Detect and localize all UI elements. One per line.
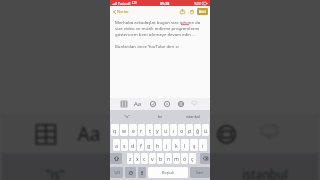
button[interactable]: Boşluk bbox=[148, 167, 188, 178]
button[interactable]: Hide keyboard bbox=[191, 100, 198, 107]
button[interactable]: n bbox=[165, 153, 172, 164]
button[interactable]: d bbox=[129, 139, 136, 151]
button[interactable]: Checklist bbox=[149, 100, 156, 107]
button[interactable]: y bbox=[154, 124, 161, 136]
staticText: a bbox=[115, 142, 118, 149]
staticText: "is" bbox=[124, 114, 130, 119]
staticText: s bbox=[123, 142, 126, 149]
button[interactable]: u bbox=[162, 124, 169, 136]
staticText: "is" bbox=[46, 166, 65, 180]
button[interactable]: Draw bbox=[169, 122, 192, 144]
button[interactable]: ğ bbox=[194, 124, 201, 136]
button[interactable]: Delete bbox=[188, 8, 195, 15]
staticText: 09:28 bbox=[160, 1, 170, 6]
button[interactable]: e bbox=[129, 124, 137, 136]
button[interactable]: k bbox=[172, 139, 180, 151]
button[interactable]: Bitti bbox=[197, 8, 208, 15]
button[interactable]: Aa bbox=[78, 122, 103, 144]
button[interactable]: s bbox=[121, 139, 128, 151]
button[interactable]: istanbul bbox=[177, 110, 210, 122]
staticText: m bbox=[174, 155, 179, 162]
button[interactable]: q bbox=[111, 124, 119, 136]
staticText: istanbul bbox=[242, 166, 290, 180]
staticText: q bbox=[113, 127, 117, 134]
staticText: k bbox=[175, 142, 178, 149]
staticText: b bbox=[159, 155, 163, 162]
button[interactable]: r bbox=[138, 124, 145, 136]
staticText: z bbox=[129, 155, 132, 162]
staticText: h bbox=[156, 142, 160, 149]
staticText: n bbox=[167, 155, 171, 162]
button[interactable]: ü bbox=[202, 124, 209, 136]
button[interactable]: Notlar bbox=[112, 8, 130, 15]
staticText: Aa bbox=[134, 100, 142, 107]
button[interactable]: z bbox=[127, 153, 133, 164]
button[interactable]: Emoji bbox=[125, 167, 136, 178]
button[interactable]: w bbox=[120, 124, 128, 136]
button[interactable]: ı bbox=[170, 124, 177, 136]
staticText: istanbul bbox=[186, 114, 201, 119]
staticText: c bbox=[143, 155, 146, 162]
staticText: Geri bbox=[196, 170, 204, 175]
button[interactable]: j bbox=[163, 139, 171, 151]
staticText: Bitti bbox=[199, 9, 206, 14]
staticText: t bbox=[149, 127, 151, 134]
staticText: 123 bbox=[114, 170, 120, 175]
button[interactable]: Camera bbox=[177, 100, 184, 107]
button[interactable]: Shift bbox=[110, 153, 122, 164]
button[interactable]: t bbox=[146, 124, 153, 136]
button[interactable]: g bbox=[145, 139, 153, 151]
button[interactable]: Backspace bbox=[200, 153, 210, 164]
button[interactable]: ç bbox=[189, 153, 196, 164]
button[interactable]: Aa bbox=[134, 100, 142, 107]
staticText: Bunlardan önce YouTube deri si bbox=[115, 43, 179, 49]
staticText: size video ve müzik indirme programların… bbox=[115, 25, 200, 31]
button[interactable]: Camera bbox=[214, 122, 236, 144]
button[interactable]: a bbox=[113, 139, 120, 151]
button[interactable]: 123 bbox=[110, 167, 123, 178]
staticText: ç bbox=[191, 155, 194, 162]
button[interactable]: h bbox=[154, 139, 162, 151]
staticText: Aa bbox=[78, 122, 103, 144]
staticText: l bbox=[184, 142, 186, 149]
button[interactable]: m bbox=[173, 153, 180, 164]
button[interactable]: mic bbox=[138, 167, 146, 178]
button[interactable]: Table bbox=[33, 122, 55, 144]
button[interactable]: istanbul bbox=[214, 153, 318, 180]
button[interactable]: Geri bbox=[190, 167, 210, 178]
button[interactable]: i bbox=[199, 139, 207, 151]
button[interactable]: f bbox=[137, 139, 144, 151]
staticText: ş bbox=[193, 142, 196, 149]
button[interactable]: "is" bbox=[110, 110, 144, 122]
button[interactable]: ö bbox=[181, 153, 188, 164]
button[interactable]: v bbox=[149, 153, 156, 164]
staticText: y bbox=[156, 127, 159, 134]
staticText: e bbox=[132, 127, 135, 134]
button[interactable]: Table bbox=[120, 100, 127, 107]
button[interactable]: Share bbox=[179, 8, 186, 15]
staticText: i bbox=[202, 142, 204, 149]
staticText: %22 bbox=[194, 1, 201, 6]
button[interactable]: c bbox=[141, 153, 148, 164]
button[interactable]: o bbox=[178, 124, 185, 136]
button[interactable]: be bbox=[144, 110, 177, 122]
button[interactable]: Draw bbox=[163, 100, 170, 107]
button[interactable]: be bbox=[109, 153, 214, 180]
staticText: g bbox=[147, 142, 151, 149]
staticText: ö bbox=[183, 155, 187, 162]
button[interactable]: p bbox=[186, 124, 193, 136]
button[interactable]: l bbox=[181, 139, 189, 151]
staticText: d bbox=[131, 142, 135, 149]
staticText: x bbox=[136, 155, 139, 162]
button[interactable]: x bbox=[134, 153, 140, 164]
button[interactable]: b bbox=[157, 153, 164, 164]
staticText: p bbox=[188, 127, 192, 134]
staticText: ı bbox=[173, 127, 175, 134]
staticText: göstericem beni izlemeye devam edin ... bbox=[115, 31, 196, 37]
button[interactable]: ş bbox=[190, 139, 198, 151]
button[interactable]: Checklist bbox=[125, 122, 147, 144]
staticText: o bbox=[180, 127, 184, 134]
